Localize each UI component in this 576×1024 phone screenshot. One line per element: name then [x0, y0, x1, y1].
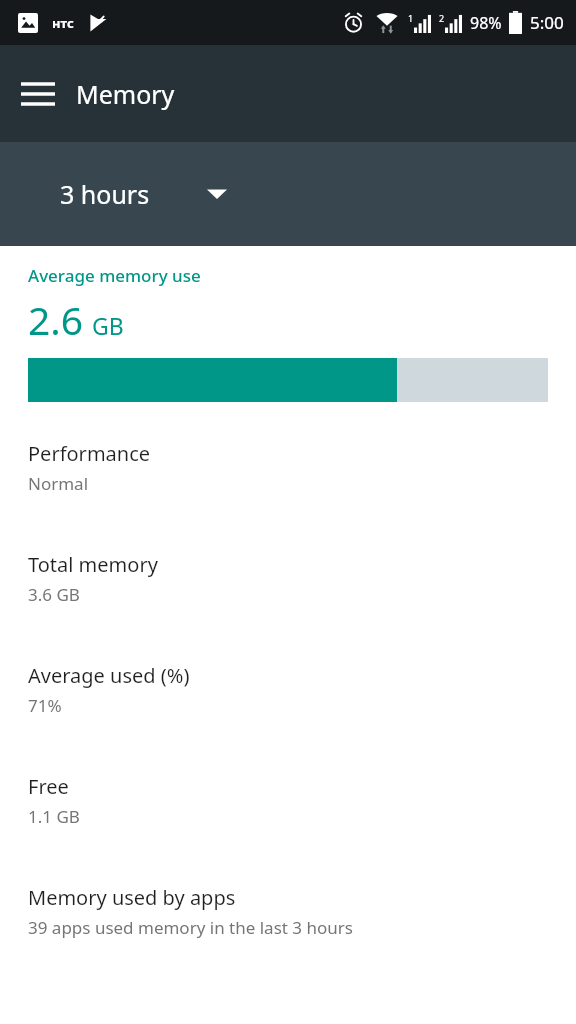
button[interactable]: Performance — [0, 426, 576, 537]
staticText: Memory used by apps — [28, 884, 236, 911]
button[interactable]: Average used (%) — [0, 648, 576, 759]
staticText: Free — [28, 773, 69, 800]
staticText: 98% — [470, 12, 502, 34]
staticText: Average used (%) — [28, 662, 190, 689]
staticText: Memory — [76, 77, 175, 111]
staticText: Total memory — [28, 551, 158, 578]
staticText: 39 apps used memory in the last 3 hours — [28, 916, 353, 939]
button[interactable]: Total memory — [0, 537, 576, 648]
staticText: 3 hours — [60, 177, 150, 211]
button[interactable]: Memory used by apps — [0, 870, 576, 981]
staticText: 1.1 GB — [28, 805, 80, 828]
button[interactable]: 3 hours — [60, 177, 227, 211]
button[interactable]: Open navigation menu — [10, 66, 66, 122]
staticText: Performance — [28, 440, 151, 467]
staticText: 2 — [439, 12, 445, 24]
staticText: нтс — [52, 14, 74, 32]
staticText: GB — [92, 310, 124, 341]
staticText: 5:00 — [530, 11, 564, 34]
staticText: Normal — [28, 472, 89, 495]
button[interactable]: Free — [0, 759, 576, 870]
staticText: 2.6 — [28, 293, 84, 346]
staticText: 3.6 GB — [28, 583, 80, 606]
staticText: 1 — [408, 12, 414, 24]
staticText: 71% — [28, 694, 62, 717]
staticText: Average memory use — [28, 264, 201, 287]
